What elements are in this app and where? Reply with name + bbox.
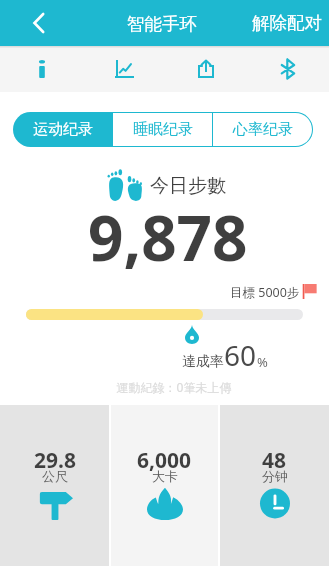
button[interactable]: 解除配对 (252, 0, 329, 46)
staticText: 9,878 (88, 195, 248, 279)
button[interactable]: 运动纪录 (14, 113, 112, 146)
staticText: 60 (224, 336, 257, 374)
button[interactable]: 29.8 (0, 405, 109, 566)
button[interactable]: 睡眠纪录 (113, 113, 212, 146)
button[interactable]: Chart (83, 46, 165, 92)
staticText: 48 (262, 446, 287, 475)
button[interactable]: Bluetooth (247, 46, 329, 92)
staticText: 29.8 (34, 446, 76, 475)
staticText: 运动纪录 (33, 120, 93, 139)
button[interactable]: 心率纪录 (213, 113, 312, 146)
staticText: 大卡 (152, 468, 178, 484)
staticText: % (257, 353, 268, 371)
staticText: 公尺 (42, 468, 68, 484)
staticText: 運動紀錄：0筆未上傳 (19, 379, 329, 395)
staticText: 6,000 (137, 446, 192, 475)
button[interactable]: Back (0, 0, 78, 46)
staticText: 目標 5000步 (230, 284, 300, 301)
staticText: 智能手环 (127, 13, 197, 35)
staticText: 今日步數 (150, 174, 226, 198)
button[interactable]: Information (0, 46, 83, 92)
button[interactable]: 48 (220, 405, 329, 566)
staticText: 睡眠纪录 (133, 120, 193, 139)
button[interactable]: 6,000 (111, 405, 218, 566)
staticText: 達成率 (182, 353, 224, 371)
staticText: 解除配对 (252, 12, 322, 34)
staticText: 分钟 (262, 468, 288, 484)
staticText: 心率纪录 (233, 120, 293, 139)
button[interactable]: Share (165, 46, 247, 92)
